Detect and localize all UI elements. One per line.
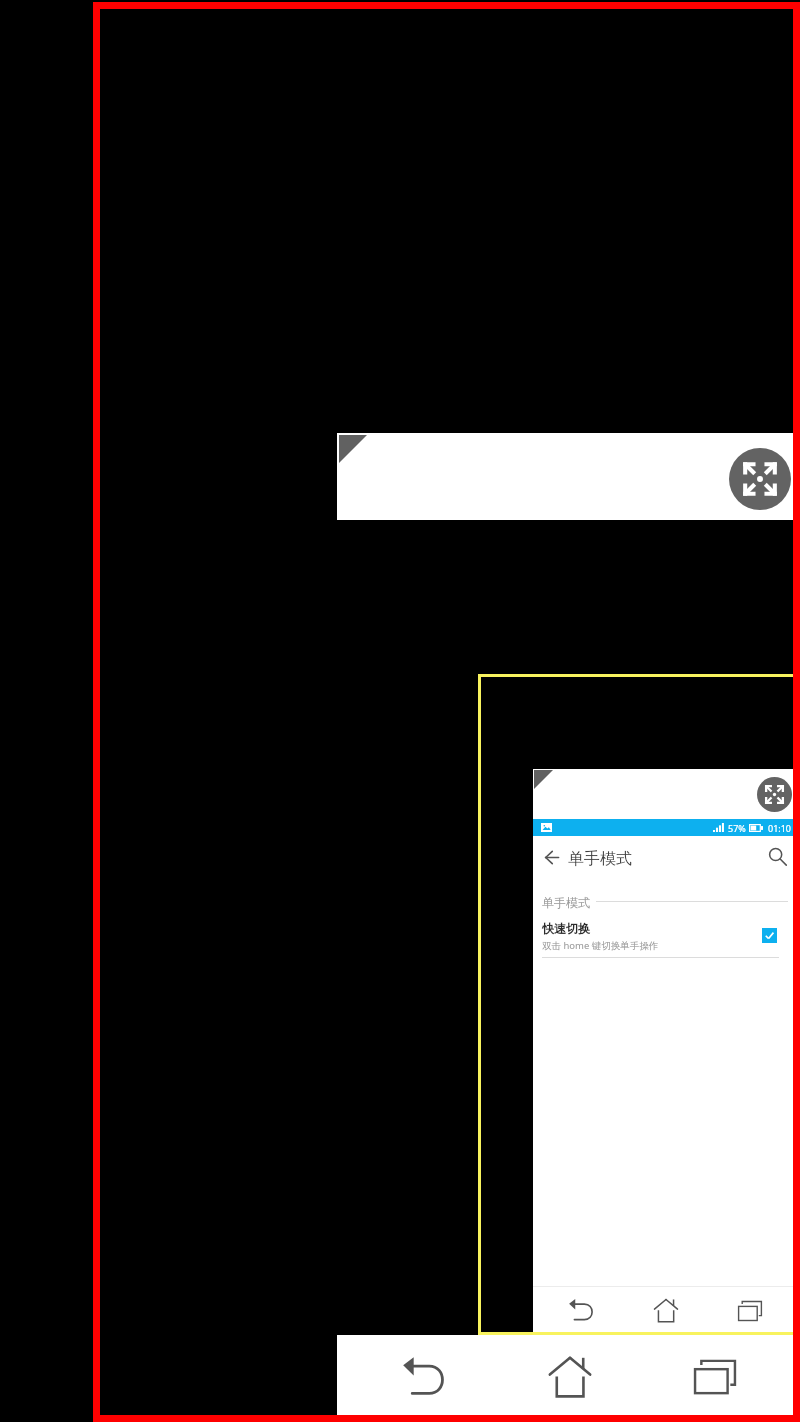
button[interactable]: Expand to full screen <box>757 777 792 812</box>
button[interactable]: Quick switch toggle <box>762 928 777 943</box>
staticText: 单手模式 <box>568 849 632 869</box>
button[interactable]: Back <box>347 1335 499 1415</box>
button[interactable]: Recent apps <box>706 1288 793 1331</box>
staticText: 57% <box>728 822 746 834</box>
button[interactable]: Home <box>622 1288 709 1331</box>
button[interactable]: Search <box>767 846 789 868</box>
button[interactable]: Back <box>537 1288 624 1331</box>
button[interactable]: Home <box>494 1335 646 1415</box>
button[interactable]: 快速切换 <box>533 915 793 957</box>
staticText: 快速切换 <box>542 921 590 936</box>
button[interactable]: Navigate up <box>541 847 562 868</box>
staticText: 双击 home 键切换单手操作 <box>542 939 659 952</box>
staticText: 01:10 <box>768 822 792 834</box>
button[interactable]: Recent apps <box>639 1335 791 1415</box>
staticText: 单手模式 <box>542 895 590 910</box>
button[interactable]: Expand to full screen <box>729 448 791 510</box>
